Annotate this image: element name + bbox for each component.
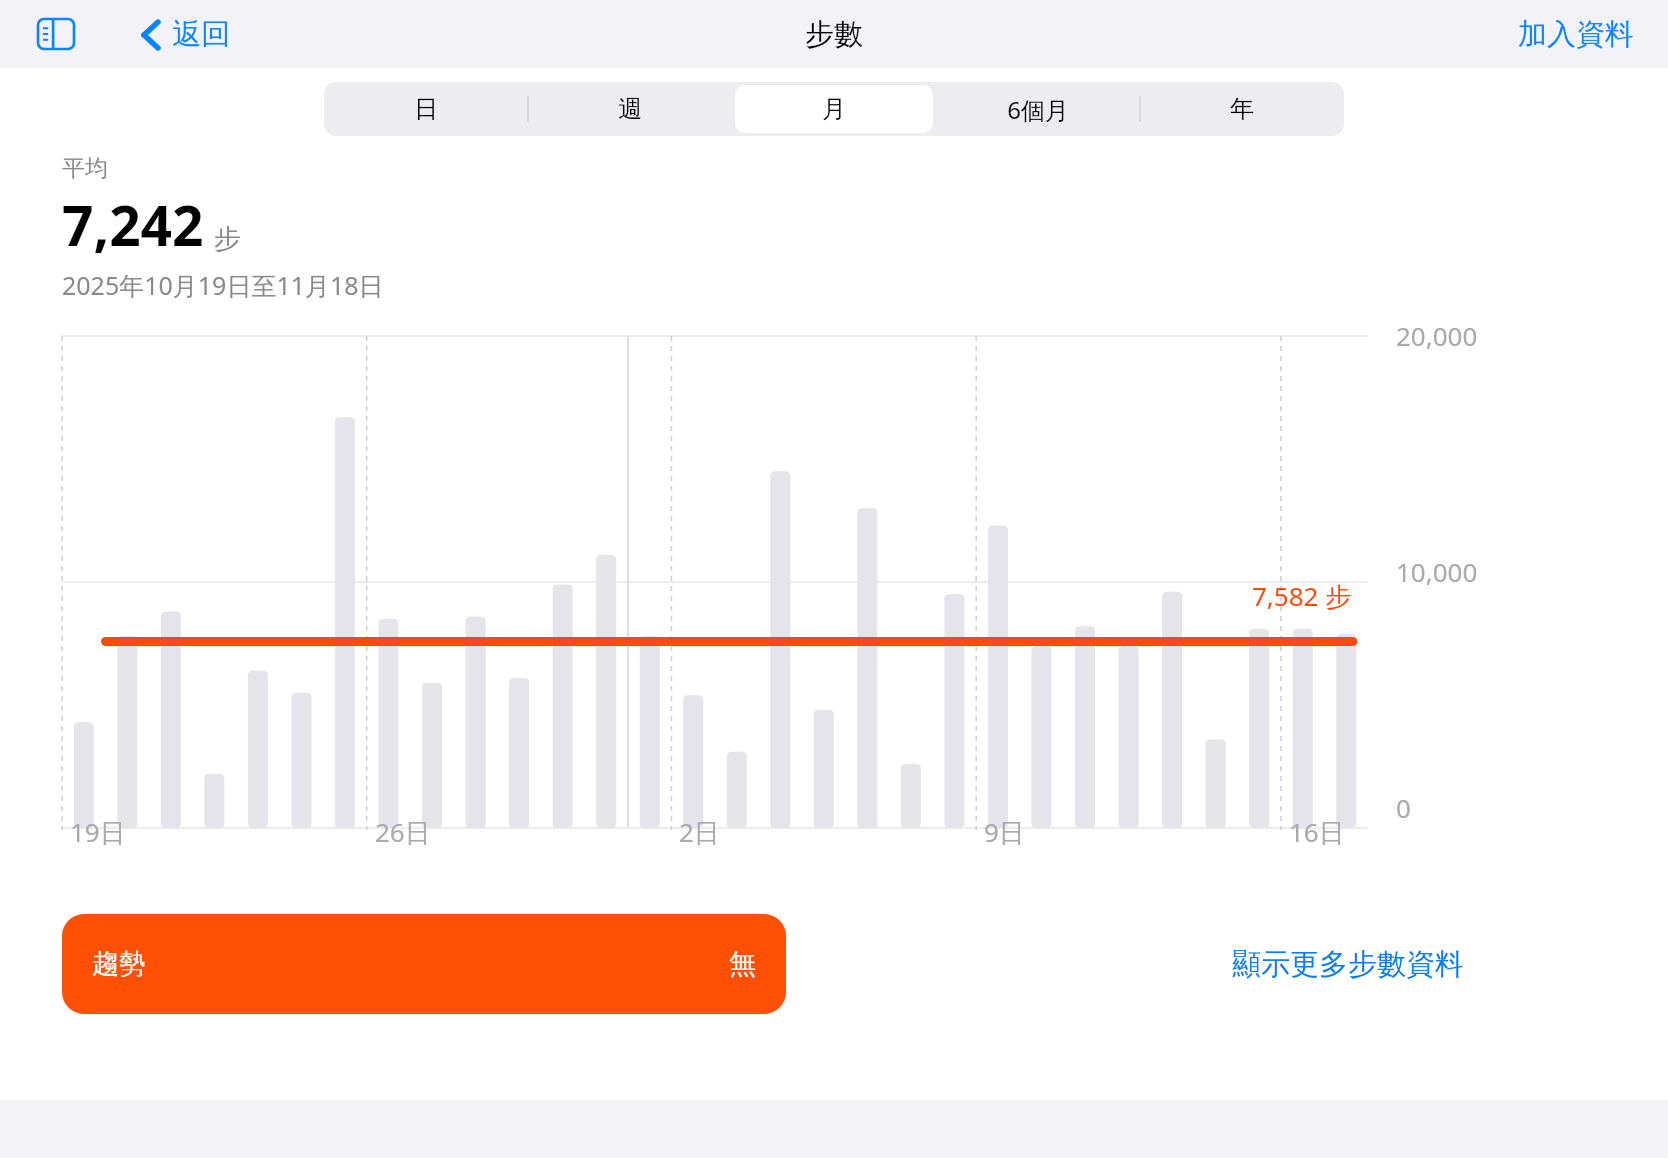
staticText: 10,000	[1396, 554, 1478, 589]
staticText: 2025年10月19日至11月18日	[62, 268, 384, 302]
staticText: 日	[414, 94, 438, 124]
button[interactable]: 6個月	[939, 85, 1137, 133]
button[interactable]: 顯示更多步數資料	[1220, 936, 1476, 993]
staticText: 7,242	[62, 187, 204, 262]
button[interactable]: 日	[327, 85, 525, 133]
staticText: 趨勢	[92, 947, 146, 981]
staticText: 加入資料	[1518, 16, 1634, 53]
staticText: 步	[214, 222, 241, 256]
staticText: 顯示更多步數資料	[1232, 946, 1464, 983]
button[interactable]: 返回	[140, 16, 230, 53]
staticText: 19日	[70, 814, 126, 850]
staticText: 週	[618, 94, 642, 124]
button[interactable]: 趨勢	[62, 914, 786, 1014]
button[interactable]: 加入資料	[1518, 16, 1634, 53]
staticText: 返回	[172, 16, 230, 53]
staticText: 0	[1396, 790, 1411, 825]
staticText: 2日	[679, 814, 720, 850]
staticText: 月	[822, 94, 846, 124]
staticText: 6個月	[1007, 93, 1069, 126]
staticText: 7,582 步	[1252, 578, 1352, 614]
staticText: 26日	[375, 814, 431, 850]
staticText: 年	[1230, 94, 1254, 124]
button[interactable]: Toggle sidebar	[30, 8, 82, 60]
staticText: 16日	[1289, 814, 1345, 850]
button[interactable]: 週	[531, 85, 729, 133]
button[interactable]: 年	[1143, 85, 1341, 133]
button[interactable]: 月	[735, 85, 933, 133]
staticText: 平均	[62, 154, 108, 183]
staticText: 步數	[805, 16, 863, 53]
staticText: 9日	[984, 814, 1025, 850]
staticText: 20,000	[1396, 318, 1478, 353]
staticText: 無	[729, 947, 756, 981]
